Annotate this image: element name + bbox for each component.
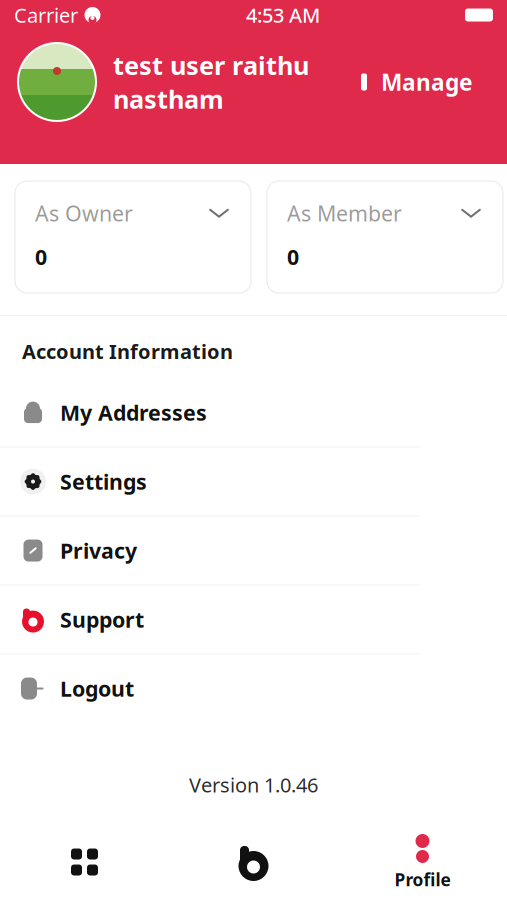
button[interactable]: Marketplace xyxy=(169,824,338,900)
button[interactable]: Support xyxy=(0,586,507,654)
staticText: 0 xyxy=(35,243,47,271)
button[interactable]: As Member xyxy=(267,181,503,293)
staticText: Account Information xyxy=(22,338,233,365)
button[interactable]: Manage xyxy=(355,67,473,97)
staticText: Version 1.0.46 xyxy=(189,771,318,798)
staticText: My Addresses xyxy=(60,398,207,427)
button[interactable]: My Addresses xyxy=(0,379,507,447)
staticText: Privacy xyxy=(60,536,137,565)
button[interactable]: Home xyxy=(0,824,169,900)
staticText: As Owner xyxy=(35,199,133,227)
staticText: Carrier xyxy=(14,2,78,28)
button[interactable]: As Owner xyxy=(15,181,251,293)
staticText: Settings xyxy=(60,467,147,496)
staticText: Profile xyxy=(394,868,450,891)
button[interactable]: Profile xyxy=(338,824,507,900)
button[interactable]: Settings xyxy=(0,448,507,516)
staticText: Logout xyxy=(60,674,134,703)
staticText: Manage xyxy=(381,67,473,97)
staticText: As Member xyxy=(287,199,402,227)
staticText: test user raithu nastham xyxy=(113,48,309,116)
staticText: 4:53 AM xyxy=(246,2,320,28)
staticText: Support xyxy=(60,605,144,634)
staticText: 0 xyxy=(287,243,299,271)
button[interactable]: Logout xyxy=(0,655,507,723)
button[interactable]: Privacy xyxy=(0,517,507,585)
